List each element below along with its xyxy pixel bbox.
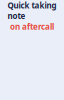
staticText: on aftercall [10,21,54,32]
staticText: Quick taking note [7,0,56,21]
